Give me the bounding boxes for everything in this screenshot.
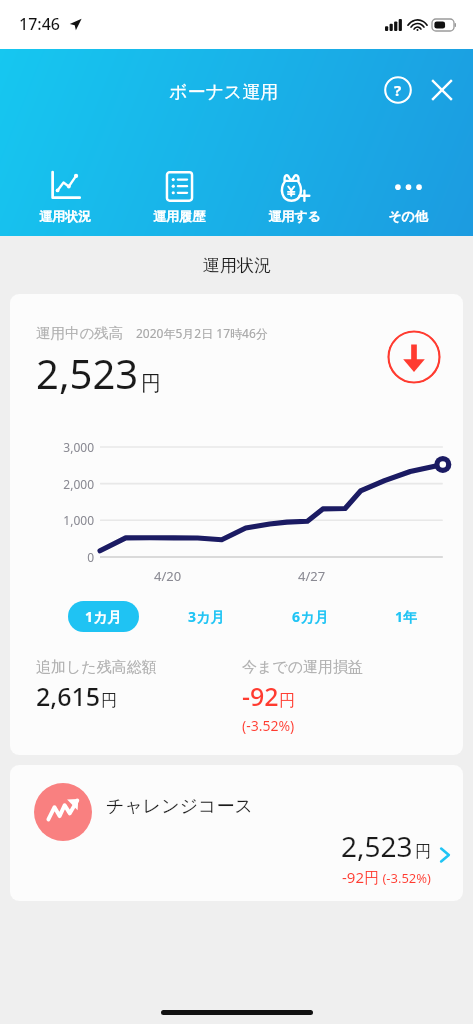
staticText: 2,523 [341, 827, 413, 865]
staticText: (-3.52%) [379, 869, 431, 887]
staticText: ボーナス運用 [169, 81, 279, 104]
staticText: 2020年5月2日 17時46分 [136, 325, 268, 341]
button[interactable]: 残高を引き出す [387, 330, 441, 384]
staticText: -92 [242, 679, 279, 713]
button[interactable]: 運用する [244, 165, 344, 226]
staticText: 1,000 [36, 512, 94, 528]
staticText: 1年 [395, 607, 418, 626]
staticText: 3カ月 [188, 607, 225, 626]
staticText: 3,000 [36, 439, 94, 455]
staticText: 円 [141, 371, 161, 396]
staticText: 運用履歴 [153, 208, 205, 224]
button[interactable]: 3カ月 [171, 601, 242, 632]
button[interactable]: 運用履歴 [129, 165, 229, 226]
button[interactable]: Help [381, 73, 415, 107]
staticText: 追加した残高総額 [36, 658, 157, 677]
staticText: 6カ月 [292, 607, 329, 626]
staticText: 今までの運用損益 [242, 658, 364, 677]
staticText: 円 [415, 842, 431, 862]
staticText: 運用中の残高 [36, 324, 124, 342]
staticText: (-3.52%) [242, 716, 295, 735]
staticText: チャレンジコース [106, 795, 253, 818]
staticText: 2,615 [36, 679, 101, 713]
staticText: 円 [279, 691, 295, 711]
staticText: ? [394, 80, 402, 100]
staticText: 運用する [268, 208, 321, 224]
staticText: 4/27 [298, 567, 326, 585]
staticText: 運用状況 [39, 208, 91, 224]
button[interactable]: 運用状況 [15, 165, 115, 226]
staticText: 17:46 [19, 13, 60, 35]
button[interactable]: その他 [358, 165, 458, 226]
staticText: 運用状況 [203, 255, 271, 276]
staticText: 4/20 [154, 567, 182, 585]
staticText: 0 [36, 549, 94, 565]
staticText: その他 [388, 208, 428, 224]
button[interactable]: Close [425, 73, 459, 107]
button[interactable]: 1カ月 [68, 601, 139, 632]
staticText: 2,000 [36, 476, 94, 492]
staticText: 円 [101, 691, 117, 711]
button[interactable]: 6カ月 [275, 601, 346, 632]
staticText: 1カ月 [85, 607, 122, 626]
button[interactable]: 1年 [378, 601, 435, 632]
staticText: -92円 [342, 867, 379, 887]
button[interactable]: チャレンジコース [10, 765, 463, 901]
staticText: 2,523 [36, 346, 139, 400]
